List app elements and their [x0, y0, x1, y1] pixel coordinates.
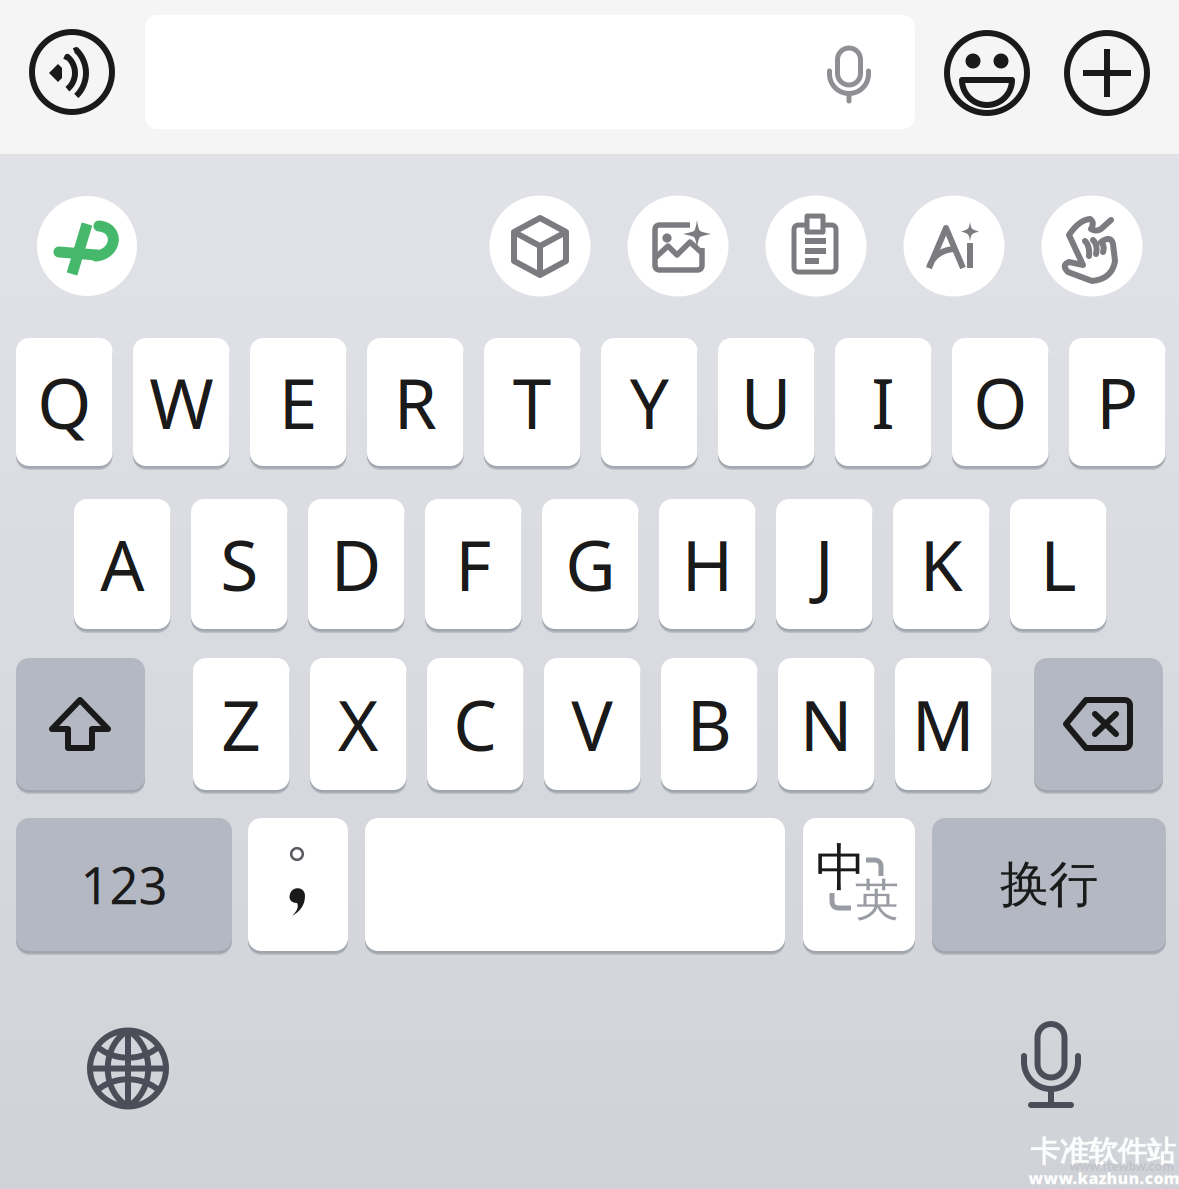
staticText: S: [220, 518, 258, 610]
staticText: D: [331, 518, 382, 610]
button[interactable]: U: [718, 338, 814, 466]
staticText: W: [149, 356, 213, 448]
staticText: 123: [80, 851, 167, 918]
button[interactable]: M: [895, 658, 991, 790]
button[interactable]: E: [250, 338, 346, 466]
button[interactable]: I: [835, 338, 931, 466]
button[interactable]: K: [893, 499, 989, 629]
staticText: P: [1096, 356, 1138, 448]
staticText: B: [687, 678, 732, 770]
staticText: O: [973, 356, 1027, 448]
staticText: 卡准软件站: [1030, 1134, 1175, 1170]
staticText: M: [912, 678, 975, 770]
staticText: www.itewbw.com: [1069, 1158, 1174, 1174]
staticText: V: [571, 678, 613, 770]
button[interactable]: O: [952, 338, 1048, 466]
button[interactable]: Tool: [627, 195, 728, 296]
button[interactable]: J: [776, 499, 872, 629]
staticText: Q: [37, 356, 91, 448]
button[interactable]: Sogou input: [37, 196, 137, 296]
staticText: L: [1040, 518, 1076, 610]
staticText: R: [394, 356, 437, 448]
button[interactable]: Shift: [0, 0, 1179, 1189]
button[interactable]: C: [427, 658, 523, 790]
button[interactable]: Dictation: [1001, 1016, 1101, 1116]
staticText: 中: [815, 837, 866, 899]
button[interactable]: R: [367, 338, 463, 466]
button[interactable]: 换行: [932, 818, 1166, 951]
staticText: N: [800, 678, 853, 770]
button[interactable]: T: [484, 338, 580, 466]
button[interactable]: L: [1010, 499, 1106, 629]
button[interactable]: V: [544, 658, 640, 790]
button[interactable]: Space: [0, 0, 1179, 1189]
staticText: A: [100, 518, 144, 610]
staticText: T: [513, 356, 552, 448]
button[interactable]: 123: [16, 818, 232, 951]
button[interactable]: X: [310, 658, 406, 790]
button[interactable]: Emoji: [947, 33, 1027, 113]
staticText: I: [871, 356, 895, 448]
button[interactable]: H: [659, 499, 755, 629]
button[interactable]: B: [661, 658, 757, 790]
staticText: www.kazhun.com: [1028, 1167, 1179, 1189]
button[interactable]: Y: [601, 338, 697, 466]
button[interactable]: Switch keyboard: [78, 1019, 178, 1119]
button[interactable]: Switch Chinese English: [0, 0, 1179, 1189]
staticText: Y: [630, 356, 669, 448]
button[interactable]: Tool: [765, 195, 866, 296]
button[interactable]: W: [133, 338, 229, 466]
button[interactable]: Q: [16, 338, 112, 466]
button[interactable]: Tool: [903, 195, 1004, 296]
button[interactable]: Z: [193, 658, 289, 790]
staticText: C: [453, 678, 497, 770]
button[interactable]: G: [542, 499, 638, 629]
staticText: E: [279, 356, 318, 448]
staticText: F: [455, 518, 491, 610]
staticText: X: [338, 678, 379, 770]
button[interactable]: Delete: [0, 0, 1179, 1189]
staticText: 英: [855, 873, 899, 927]
button[interactable]: P: [1069, 338, 1165, 466]
staticText: K: [920, 518, 963, 610]
button[interactable]: More: [1067, 33, 1147, 113]
staticText: H: [682, 518, 733, 610]
button[interactable]: Tool: [489, 195, 590, 296]
staticText: Z: [221, 678, 261, 770]
button[interactable]: S: [191, 499, 287, 629]
staticText: U: [741, 356, 792, 448]
staticText: G: [565, 518, 615, 610]
staticText: J: [815, 518, 834, 610]
staticText: 换行: [1000, 854, 1098, 915]
button[interactable]: F: [425, 499, 521, 629]
button[interactable]: D: [308, 499, 404, 629]
button[interactable]: Tool: [1041, 195, 1142, 296]
button[interactable]: Comma: [0, 0, 1179, 1189]
button[interactable]: A: [74, 499, 170, 629]
button[interactable]: Dictate: [814, 27, 884, 117]
button[interactable]: Voice input: [32, 32, 112, 112]
button[interactable]: N: [778, 658, 874, 790]
